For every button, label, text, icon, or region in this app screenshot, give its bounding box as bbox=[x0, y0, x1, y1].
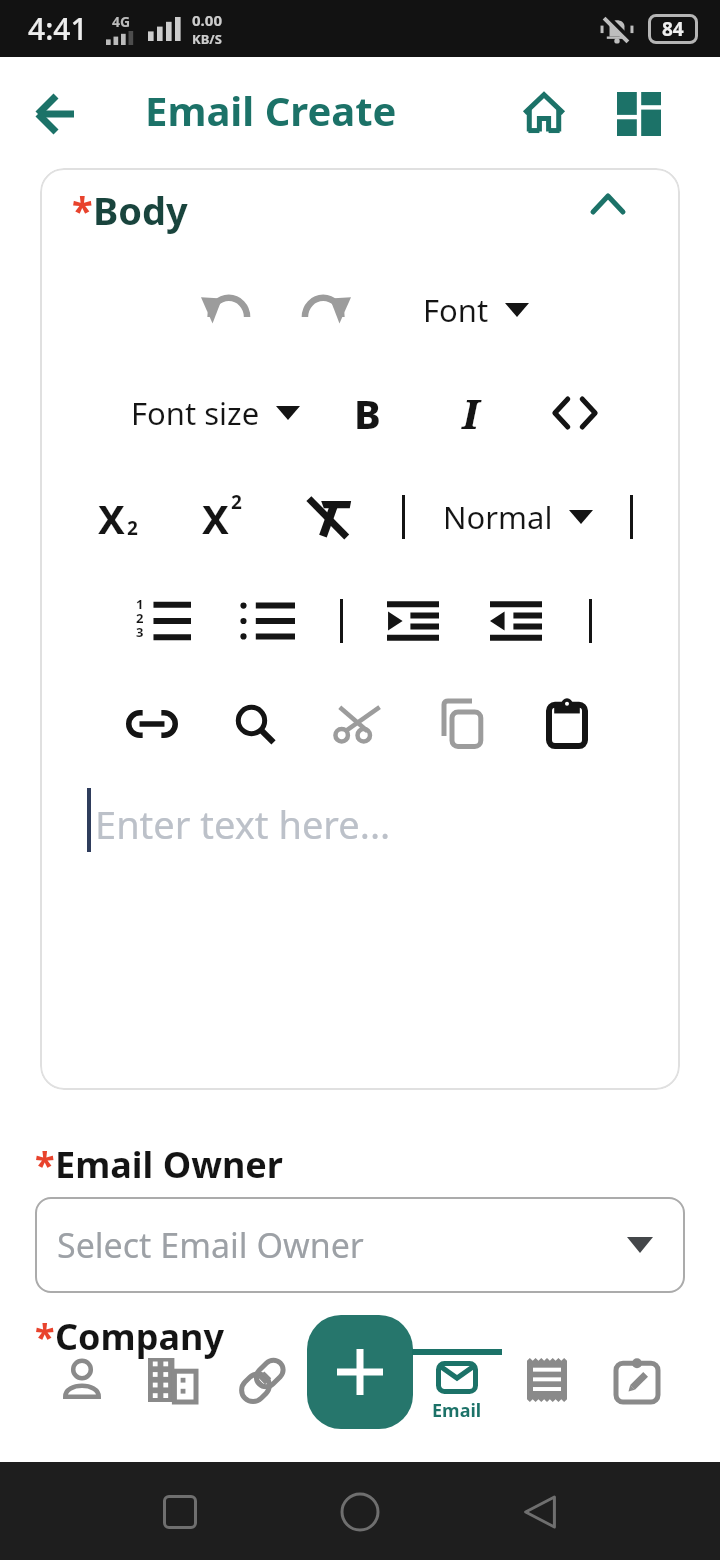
button[interactable] bbox=[334, 704, 382, 744]
button[interactable] bbox=[307, 1315, 413, 1429]
button[interactable]: Font size bbox=[131, 391, 300, 435]
button[interactable] bbox=[303, 294, 351, 326]
button[interactable]: Normal bbox=[443, 495, 593, 539]
staticText: 2 bbox=[136, 609, 144, 627]
button[interactable]: X bbox=[202, 491, 258, 543]
button[interactable] bbox=[490, 601, 542, 641]
button[interactable]: Select Email Owner bbox=[35, 1197, 685, 1293]
button[interactable] bbox=[308, 497, 352, 537]
button[interactable] bbox=[387, 601, 439, 641]
button[interactable]: X bbox=[98, 491, 154, 543]
button[interactable] bbox=[30, 88, 82, 140]
staticText: 3 bbox=[136, 623, 144, 641]
staticText: X bbox=[202, 491, 229, 543]
button[interactable] bbox=[613, 88, 665, 140]
staticText: * bbox=[35, 1312, 55, 1361]
button[interactable]: Email bbox=[417, 1361, 497, 1423]
staticText: B bbox=[354, 386, 381, 440]
staticText: * bbox=[35, 1140, 55, 1189]
button[interactable] bbox=[233, 702, 277, 746]
button[interactable]: I bbox=[448, 385, 492, 441]
staticText: Font bbox=[423, 289, 489, 331]
button[interactable]: B bbox=[345, 385, 389, 441]
button[interactable] bbox=[148, 1358, 196, 1402]
button[interactable] bbox=[239, 599, 295, 643]
button[interactable]: 1 bbox=[135, 599, 191, 643]
button[interactable] bbox=[126, 710, 178, 738]
staticText: I bbox=[462, 386, 479, 440]
button[interactable]: Font bbox=[423, 288, 529, 332]
staticText: Email bbox=[432, 1398, 482, 1423]
button[interactable] bbox=[442, 700, 482, 748]
button[interactable] bbox=[522, 1495, 558, 1529]
staticText: Enter text here... bbox=[95, 798, 391, 850]
button[interactable] bbox=[163, 1495, 197, 1529]
staticText: 2 bbox=[231, 489, 242, 515]
button[interactable] bbox=[518, 88, 570, 140]
staticText: 4G bbox=[112, 12, 131, 31]
staticText: 84 bbox=[662, 16, 684, 42]
button[interactable] bbox=[551, 399, 599, 427]
button[interactable] bbox=[580, 176, 636, 232]
staticText: Select Email Owner bbox=[57, 1222, 364, 1268]
staticText: Email Owner bbox=[55, 1140, 283, 1189]
button[interactable] bbox=[60, 1358, 104, 1402]
staticText: Normal bbox=[443, 496, 553, 538]
button[interactable] bbox=[547, 700, 587, 748]
staticText: X bbox=[98, 491, 125, 543]
staticText: Body bbox=[93, 184, 188, 236]
staticText: Email Create bbox=[145, 83, 397, 137]
staticText: KB/S bbox=[192, 30, 222, 48]
button[interactable] bbox=[201, 294, 249, 326]
staticText: Company bbox=[55, 1312, 224, 1361]
staticText: 4:41 bbox=[28, 8, 88, 49]
button[interactable] bbox=[238, 1358, 286, 1402]
staticText: * bbox=[72, 184, 93, 236]
button[interactable]: Enter text here... bbox=[64, 768, 656, 1068]
staticText: Font size bbox=[131, 392, 260, 434]
button[interactable] bbox=[527, 1358, 567, 1402]
staticText: 0.00 bbox=[192, 10, 222, 30]
staticText: 2 bbox=[127, 515, 138, 541]
staticText: 1 bbox=[136, 595, 144, 613]
button[interactable] bbox=[340, 1492, 380, 1532]
button[interactable] bbox=[616, 1358, 658, 1402]
